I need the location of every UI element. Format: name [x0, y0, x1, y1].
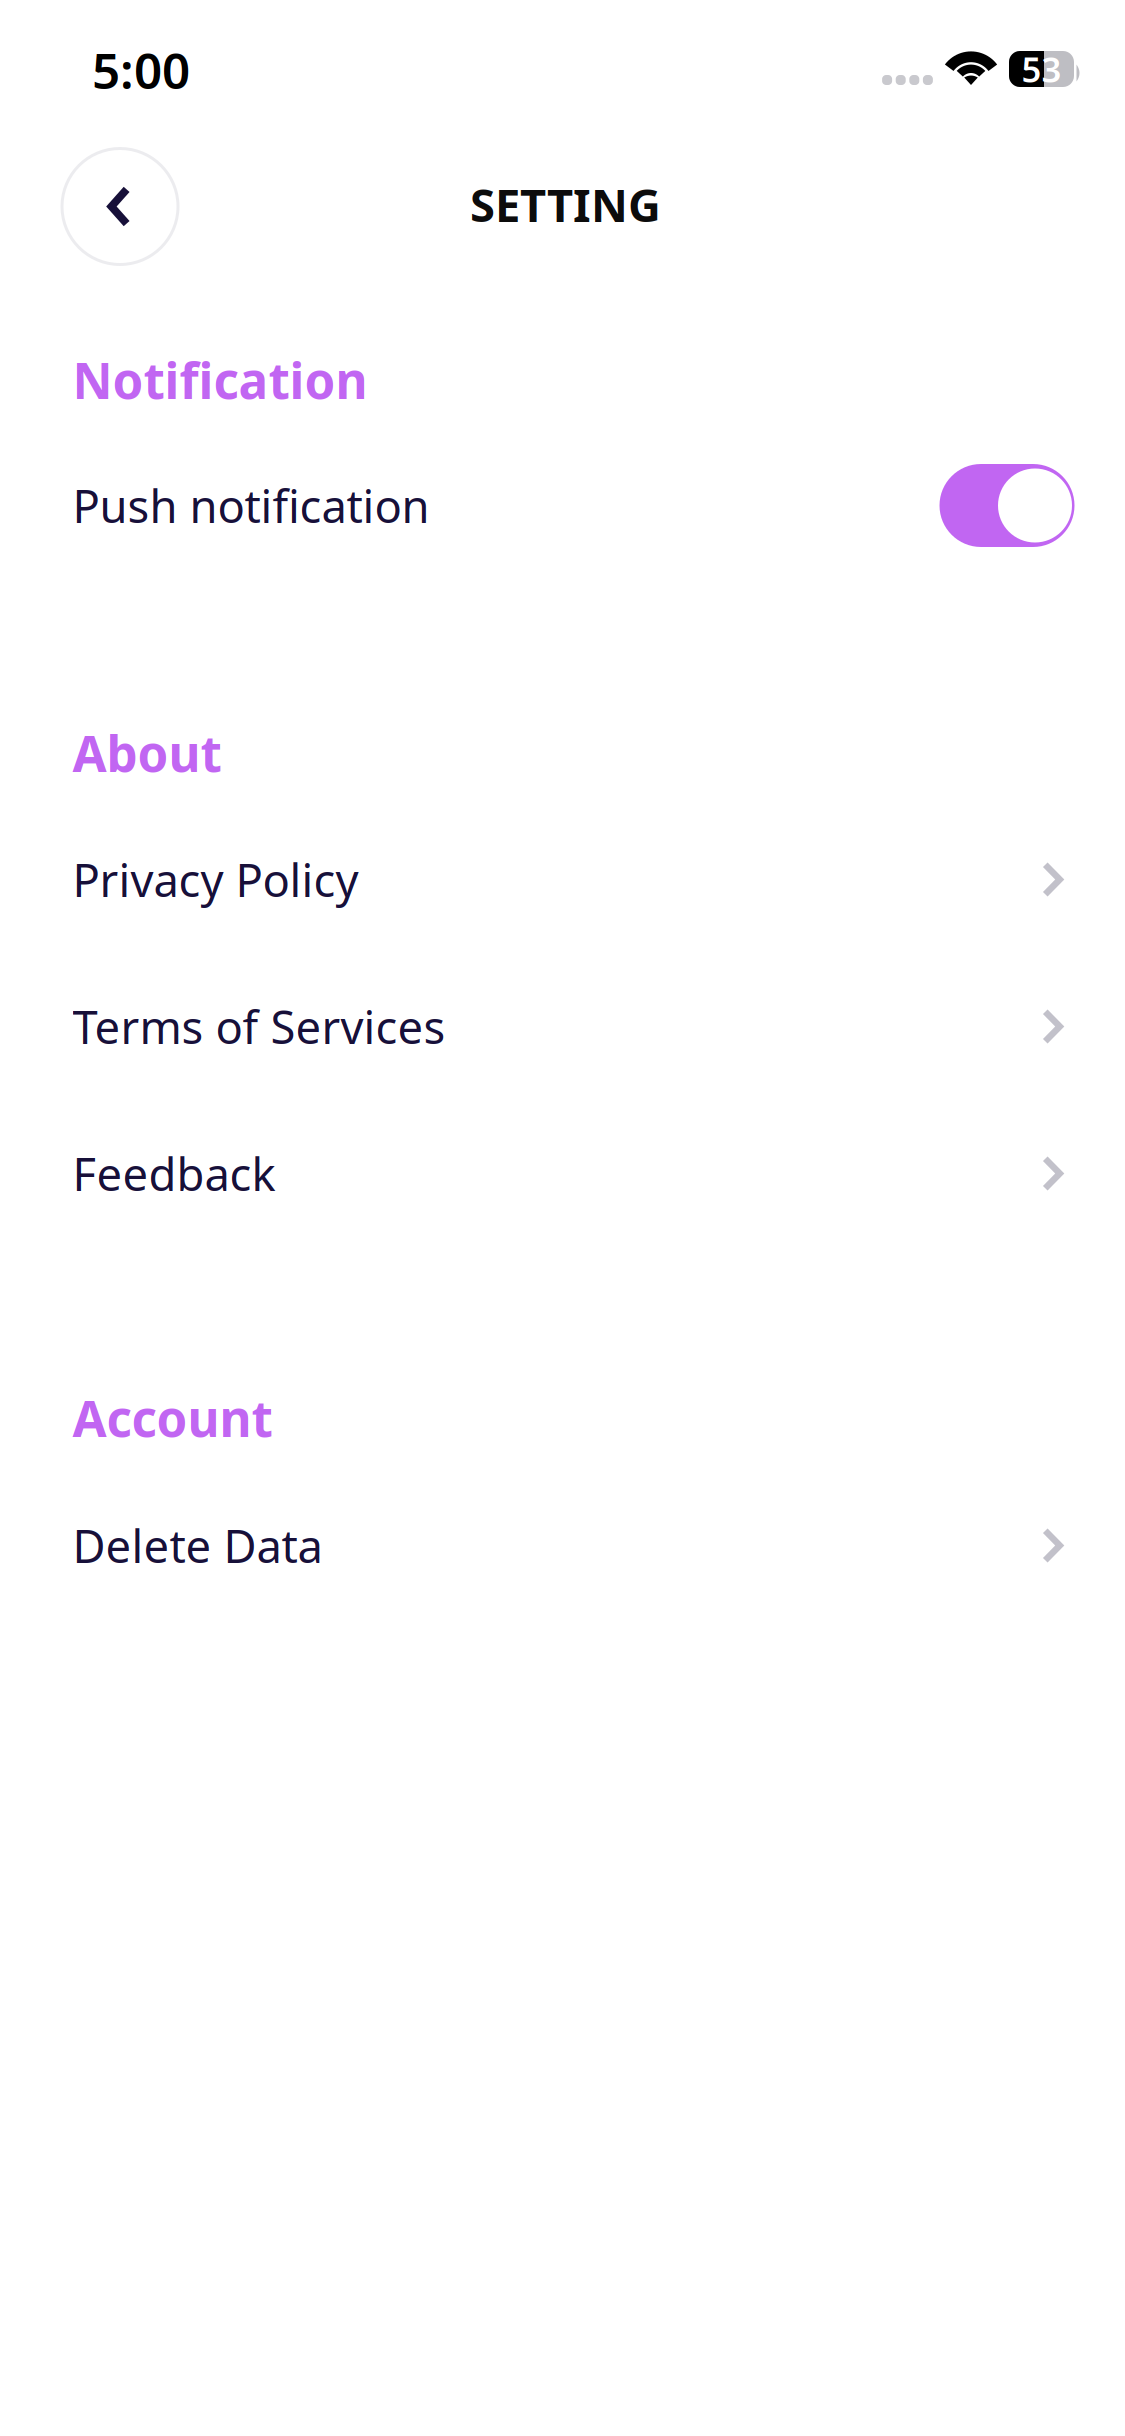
staticText: Push notification — [72, 475, 429, 536]
staticText: 5:00 — [92, 37, 190, 103]
staticText: Delete Data — [72, 1515, 322, 1576]
staticText: Privacy Policy — [72, 849, 358, 910]
button[interactable]: Back — [61, 147, 179, 265]
staticText: SETTING — [470, 174, 661, 235]
button[interactable]: Terms of Services — [72, 995, 1063, 1057]
button[interactable]: Privacy Policy — [72, 848, 1063, 910]
staticText: 53 — [1021, 46, 1061, 92]
staticText: Account — [72, 1385, 272, 1450]
button[interactable]: Delete Data — [72, 1514, 1063, 1576]
staticText: Notification — [72, 347, 367, 412]
staticText: About — [72, 720, 221, 785]
button[interactable]: Push notification, on — [939, 464, 1074, 547]
staticText: Feedback — [72, 1143, 275, 1204]
staticText: Terms of Services — [72, 996, 445, 1057]
button[interactable]: Feedback — [72, 1142, 1063, 1204]
